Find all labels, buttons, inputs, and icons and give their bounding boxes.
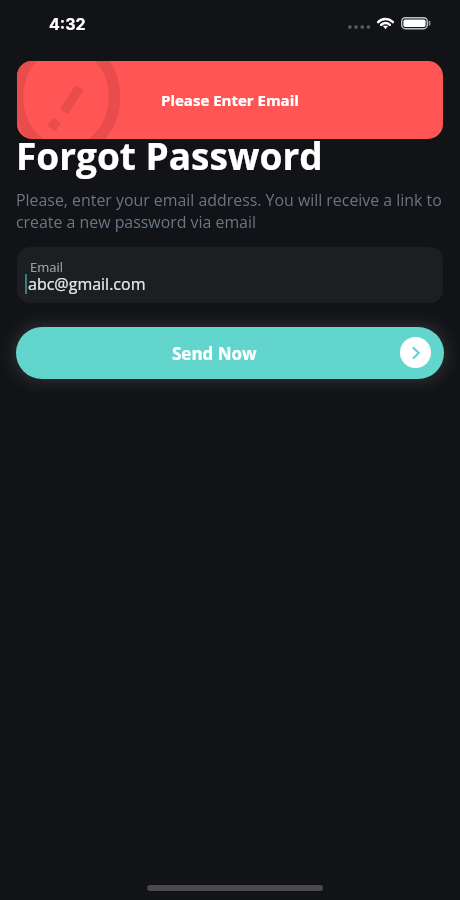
button[interactable]: Please Enter Email bbox=[17, 61, 443, 139]
staticText: 4:32 bbox=[49, 14, 86, 33]
button[interactable]: Email bbox=[17, 247, 443, 303]
staticText: abc@gmail.com bbox=[28, 273, 146, 295]
staticText: Please Enter Email bbox=[161, 90, 299, 110]
button[interactable]: Send Now bbox=[16, 327, 444, 379]
staticText: Forgot Password bbox=[16, 130, 323, 180]
staticText: Please, enter your email address. You wi… bbox=[16, 189, 442, 233]
staticText: Email bbox=[30, 258, 64, 276]
staticText: Send Now bbox=[172, 342, 257, 365]
other: Submit bbox=[400, 337, 431, 368]
